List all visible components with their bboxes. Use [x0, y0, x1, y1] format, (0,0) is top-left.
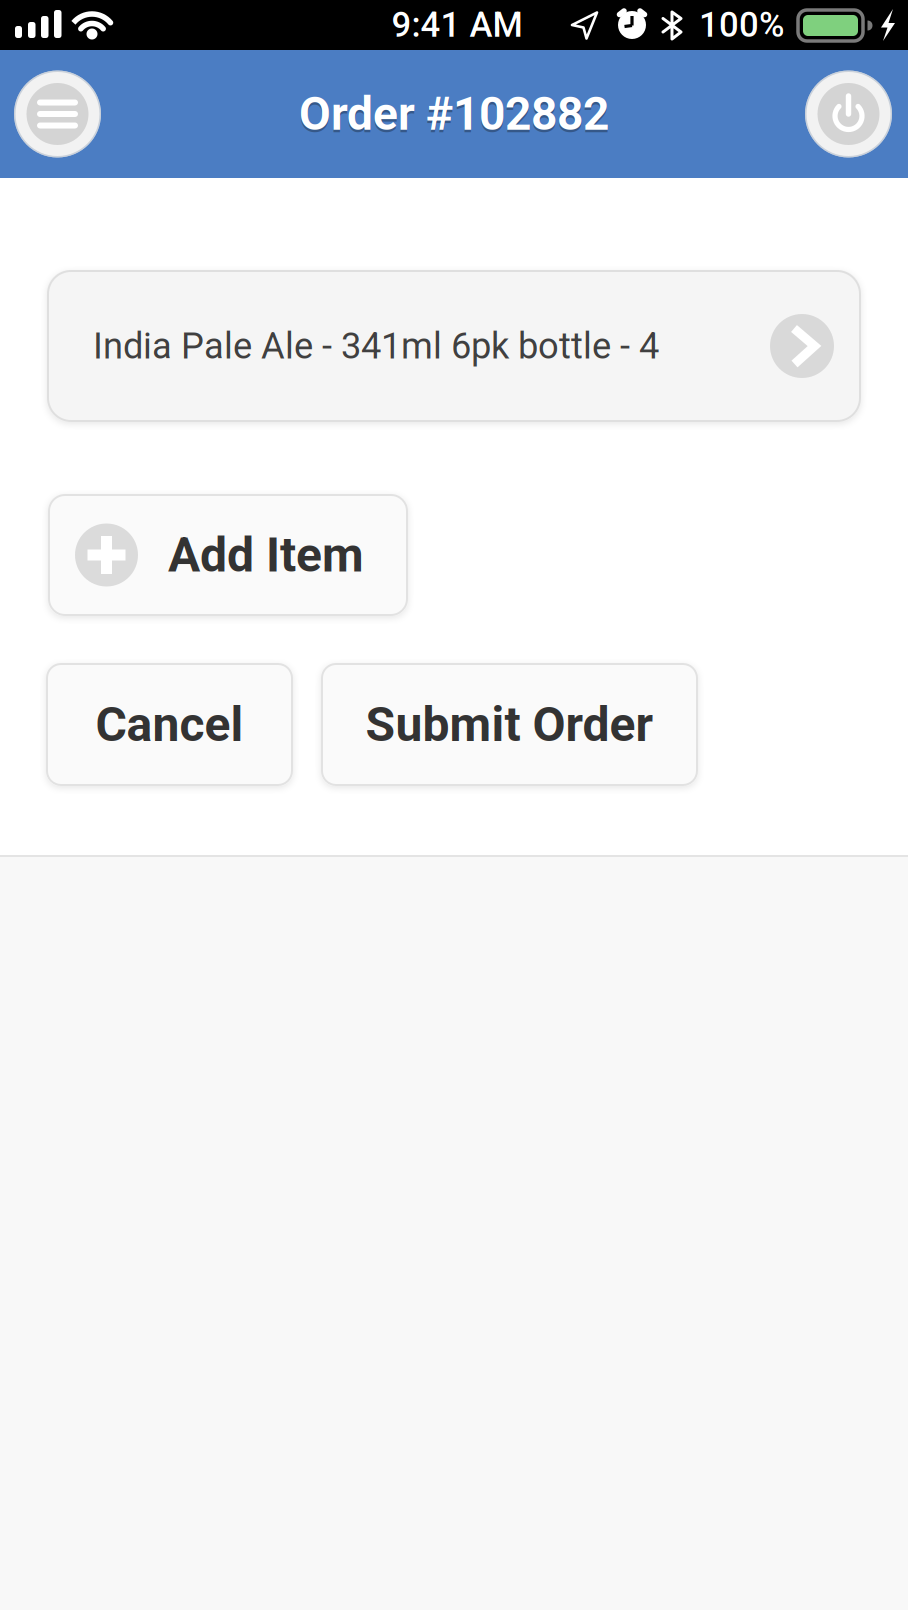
button[interactable]: Menu [14, 70, 101, 157]
staticText: 9:41 AM [391, 5, 522, 45]
staticText: Add Item [168, 527, 364, 583]
button[interactable]: Add Item [48, 494, 408, 616]
staticText: Order #102882 [299, 89, 609, 143]
button[interactable]: Submit Order [321, 663, 698, 786]
staticText: Order #102882 [299, 87, 609, 141]
staticText: Submit Order [365, 696, 653, 753]
staticText: India Pale Ale - 341ml 6pk bottle - 4 [93, 325, 659, 367]
staticText: 100% [699, 5, 785, 45]
button[interactable]: India Pale Ale - 341ml 6pk bottle - 4 [47, 270, 861, 422]
staticText: Cancel [95, 696, 243, 753]
button[interactable]: Cancel [46, 663, 293, 786]
button[interactable]: Power [805, 70, 892, 157]
